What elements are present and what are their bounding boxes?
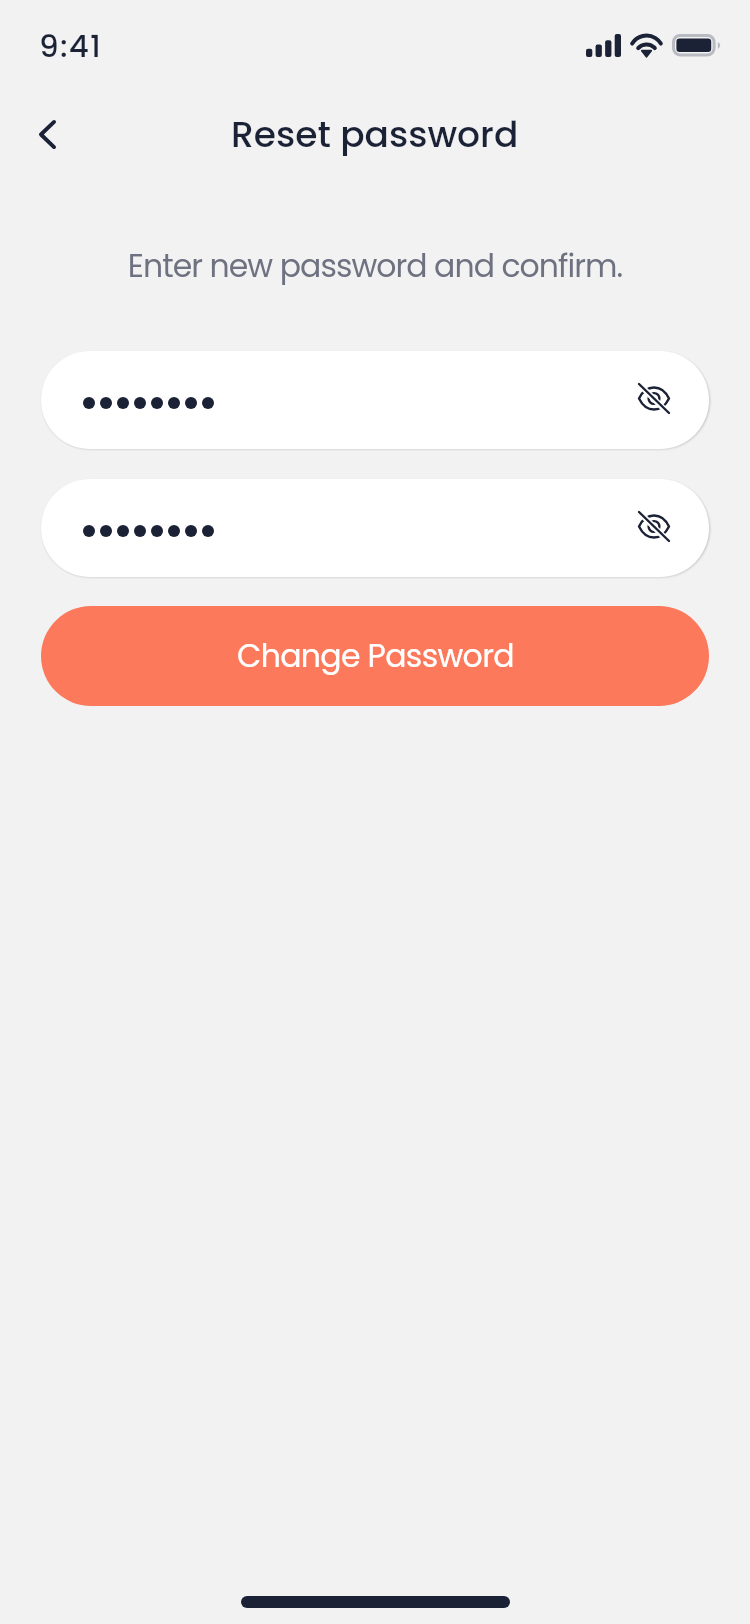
staticText: Reset password [231, 109, 519, 159]
button[interactable]: Show password [632, 378, 676, 422]
staticText: 9:41 [39, 24, 102, 67]
button[interactable]: Show password [632, 506, 676, 550]
staticText: Enter new password and confirm. [0, 244, 750, 288]
button[interactable]: Show password [41, 479, 709, 577]
button[interactable]: Show password [41, 351, 709, 449]
button[interactable]: Back [18, 105, 76, 163]
staticText: Change Password [237, 634, 514, 678]
button[interactable]: Change Password [41, 606, 709, 706]
